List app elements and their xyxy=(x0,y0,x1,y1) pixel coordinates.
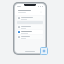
button[interactable] xyxy=(17,30,43,34)
button[interactable] xyxy=(17,16,43,20)
button[interactable]: More options xyxy=(15,8,45,15)
button[interactable] xyxy=(17,35,43,39)
button[interactable] xyxy=(17,25,43,29)
button[interactable]: Add xyxy=(40,47,48,55)
